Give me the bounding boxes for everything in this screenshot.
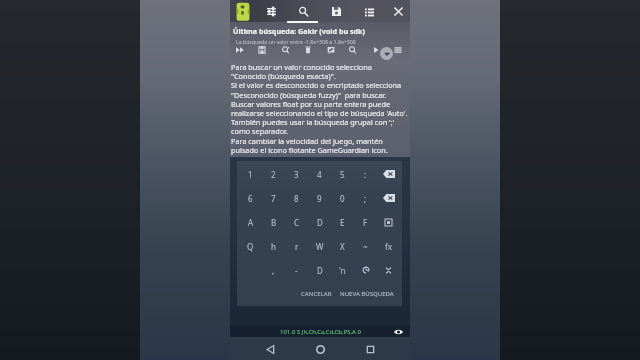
staticText: , — [272, 265, 275, 276]
button[interactable]: ; — [354, 186, 377, 210]
button[interactable]: Home — [310, 339, 330, 359]
staticText: fx — [385, 241, 392, 252]
staticText: 9 — [317, 193, 322, 204]
button[interactable]: E — [331, 210, 354, 234]
button[interactable]: X — [331, 234, 354, 258]
button[interactable]: F — [354, 210, 377, 234]
staticText: D — [317, 217, 323, 228]
button[interactable]: 5 — [331, 162, 354, 186]
button[interactable]: CANCELAR — [297, 290, 336, 298]
button[interactable]: 1 — [239, 162, 262, 186]
staticText: C — [294, 217, 300, 228]
staticText: realizarse seleccionando el tipo de búsq… — [231, 108, 408, 118]
button[interactable]: sync — [320, 44, 342, 56]
staticText: - — [295, 265, 298, 276]
staticText: Última búsqueda: Gakir (void bu sdk) — [233, 26, 366, 36]
button[interactable]: 4 — [308, 162, 331, 186]
staticText: : — [364, 169, 367, 180]
button[interactable]: Q — [239, 234, 262, 258]
staticText: 6 — [248, 193, 253, 204]
button[interactable]: Visibility — [392, 326, 404, 337]
button[interactable]: B — [262, 210, 285, 234]
staticText: 0 — [340, 193, 345, 204]
staticText: ; — [364, 193, 367, 204]
button[interactable]: r — [285, 234, 308, 258]
staticText: r — [295, 241, 299, 252]
button[interactable]: menu — [387, 44, 409, 56]
button[interactable]: : — [354, 162, 377, 186]
staticText: Q — [247, 241, 254, 252]
staticText: 8 — [294, 193, 299, 204]
button[interactable]: 7 — [262, 186, 285, 210]
staticText: 3 — [294, 169, 299, 180]
button[interactable]: - — [285, 258, 308, 282]
staticText: E — [340, 217, 345, 228]
button[interactable] — [377, 186, 400, 210]
staticText: 5 — [340, 169, 345, 180]
button[interactable]: C — [285, 210, 308, 234]
button[interactable]: save — [323, 0, 349, 22]
button[interactable]: GameGuardian — [232, 0, 254, 22]
button[interactable] — [377, 258, 400, 282]
staticText: "Desconocido (búsqueda fuzzy)" para busc… — [231, 90, 387, 100]
staticText: D — [317, 265, 323, 276]
staticText: 1 — [248, 169, 253, 180]
button[interactable]: 'n — [331, 258, 354, 282]
button[interactable]: h — [262, 234, 285, 258]
button[interactable]: play — [365, 44, 387, 56]
button[interactable]: searchq — [275, 44, 297, 56]
button[interactable]: 0 — [331, 186, 354, 210]
staticText: B — [271, 217, 277, 228]
button[interactable]: fx — [377, 234, 400, 258]
staticText: como separador. — [231, 126, 288, 136]
button[interactable]: , — [262, 258, 285, 282]
staticText: También puedes usar la búsqueda grupal c… — [231, 117, 395, 127]
button[interactable]: Back — [260, 339, 280, 359]
staticText: pulsado el icono flotante GameGuardian i… — [231, 145, 388, 155]
staticText: Para cambiar la velocidad del juego, man… — [231, 136, 383, 146]
button[interactable]: db — [251, 44, 273, 56]
button[interactable] — [377, 210, 400, 234]
staticText: X — [340, 241, 345, 252]
staticText: Buscar valores float por su parte entera… — [231, 99, 391, 109]
staticText: La búsqueda un valor entre -1.8e+308 a 1… — [236, 38, 356, 45]
button[interactable] — [377, 162, 400, 186]
button[interactable]: 3 — [285, 162, 308, 186]
button[interactable]: 9 — [308, 186, 331, 210]
button[interactable]: A — [239, 210, 262, 234]
button[interactable]: 8 — [285, 186, 308, 210]
staticText: W — [316, 241, 324, 252]
button[interactable]: NUEVA BÚSQUEDA — [336, 290, 402, 298]
staticText: Para buscar un valor conocido selecciona — [231, 62, 372, 72]
button[interactable]: list — [356, 0, 382, 22]
staticText: h — [271, 241, 276, 252]
button[interactable] — [354, 258, 377, 282]
staticText: 4 — [317, 169, 322, 180]
staticText: F — [363, 217, 368, 228]
button[interactable]: W — [308, 234, 331, 258]
button[interactable]: trash — [297, 44, 319, 56]
staticText: 'n — [339, 265, 346, 276]
button[interactable]: tune — [258, 0, 284, 22]
staticText: Si el valor es desconocido o encriptado … — [231, 80, 402, 90]
button[interactable]: ~ — [354, 234, 377, 258]
button[interactable]: 2 — [262, 162, 285, 186]
staticText: 101.0 S Jh,Ch,Ca,Cd,Cb,PS,A 0 — [280, 328, 361, 336]
button[interactable]: search — [290, 0, 316, 22]
button[interactable]: D — [308, 210, 331, 234]
staticText: A — [248, 217, 254, 228]
staticText: "Conocido (búsqueda exacta)". — [231, 71, 336, 81]
staticText: 2 — [271, 169, 276, 180]
button[interactable]: Floating menu — [380, 47, 393, 60]
button[interactable]: D — [308, 258, 331, 282]
button[interactable]: close — [385, 0, 411, 22]
staticText: ~ — [363, 241, 368, 252]
button[interactable]: search2 — [342, 44, 364, 56]
staticText: 7 — [271, 193, 276, 204]
button[interactable]: ff — [229, 44, 251, 56]
button[interactable]: Recents — [360, 339, 380, 359]
button[interactable]: 6 — [239, 186, 262, 210]
